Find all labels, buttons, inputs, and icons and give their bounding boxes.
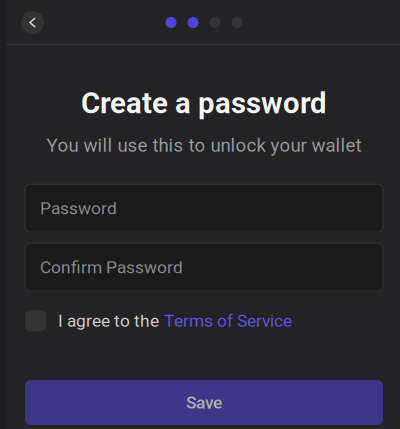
staticText: Confirm Password [40, 257, 183, 277]
button[interactable]: I agree to the Terms of Service [25, 310, 46, 331]
staticText: Terms of Service [164, 311, 292, 331]
staticText: Password [40, 198, 117, 218]
staticText: Create a password [81, 86, 327, 120]
button[interactable]: Back [17, 0, 48, 44]
button[interactable]: Terms of Service [164, 311, 292, 331]
staticText: I agree to the [58, 311, 159, 331]
staticText: You will use this to unlock your wallet [46, 134, 361, 156]
staticText: Save [186, 392, 222, 413]
button[interactable]: Save [25, 380, 383, 425]
